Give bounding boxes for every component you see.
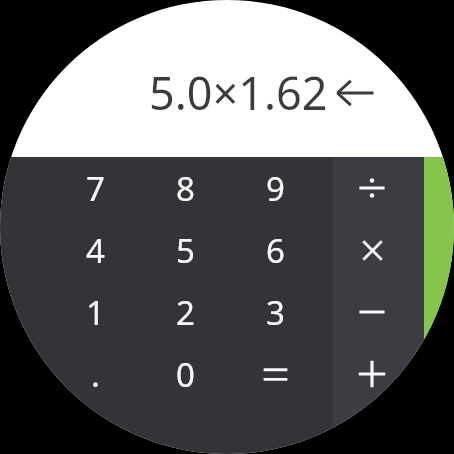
button[interactable]: 7	[50, 157, 140, 219]
button[interactable]: 1	[50, 281, 140, 343]
button[interactable]: Multiply	[334, 219, 410, 281]
button[interactable]: 3	[230, 281, 320, 343]
button[interactable]: Divide	[334, 157, 410, 219]
staticText: 0	[176, 352, 195, 397]
button[interactable]: 5	[140, 219, 230, 281]
staticText: .	[91, 352, 100, 397]
button[interactable]: 8	[140, 157, 230, 219]
staticText: 1	[86, 290, 105, 335]
button[interactable]: 6	[230, 219, 320, 281]
staticText: 8	[176, 166, 195, 211]
staticText: 7	[86, 166, 105, 211]
staticText: 9	[266, 166, 285, 211]
button[interactable]: Backspace	[328, 66, 382, 120]
staticText: 5	[176, 228, 195, 273]
staticText: 6	[266, 228, 285, 273]
button[interactable]: 5.0×1.62	[149, 48, 328, 109]
button[interactable]: Subtract	[334, 281, 410, 343]
staticText: 3	[266, 290, 285, 335]
button[interactable]: Add	[334, 343, 410, 405]
button[interactable]: 4	[50, 219, 140, 281]
button[interactable]: 0	[140, 343, 230, 405]
staticText: 2	[176, 290, 195, 335]
button[interactable]: .	[50, 343, 140, 405]
button[interactable]: 9	[230, 157, 320, 219]
button[interactable]: 2	[140, 281, 230, 343]
button[interactable]: Equals	[230, 343, 320, 405]
staticText: 4	[86, 228, 105, 273]
